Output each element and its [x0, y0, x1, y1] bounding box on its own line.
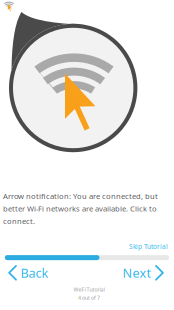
- staticText: Next: [122, 264, 151, 281]
- staticText: 4 out of 7: [78, 294, 100, 301]
- staticText: Skip Tutorial: [129, 242, 168, 251]
- staticText: Back: [20, 264, 48, 281]
- staticText: better Wi-Fi networks are available. Cli…: [3, 203, 157, 214]
- button[interactable]: Next: [120, 263, 164, 283]
- button[interactable]: Skip Tutorial: [114, 240, 168, 253]
- staticText: Arrow notification: You are connected, b…: [3, 191, 158, 201]
- staticText: connect.: [3, 216, 35, 226]
- button[interactable]: Back: [8, 263, 52, 283]
- staticText: WeFi Tutorial: [73, 286, 104, 293]
